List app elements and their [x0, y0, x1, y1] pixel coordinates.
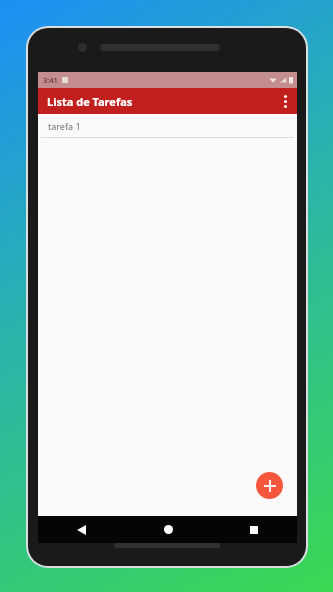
button[interactable]: Add task — [256, 472, 283, 499]
button[interactable]: Back — [38, 516, 125, 543]
button[interactable]: Recent apps — [211, 516, 297, 543]
staticText: 3:41 — [43, 75, 58, 85]
button[interactable]: Home — [125, 516, 211, 543]
staticText: Lista de Tarefas — [47, 94, 133, 109]
button[interactable]: More options — [273, 89, 297, 113]
button[interactable]: tarefa 1 — [38, 114, 297, 138]
staticText: tarefa 1 — [48, 120, 81, 132]
